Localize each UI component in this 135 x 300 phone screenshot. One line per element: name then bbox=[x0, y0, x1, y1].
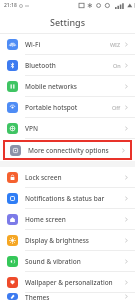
button[interactable]: Themes bbox=[0, 293, 135, 300]
button[interactable]: Sound & vibration bbox=[0, 251, 135, 271]
staticText: Home screen bbox=[25, 215, 124, 224]
staticText: More connectivity options bbox=[28, 146, 121, 155]
staticText: Themes bbox=[25, 293, 124, 300]
other: Open Notifications & status bar bbox=[124, 196, 129, 201]
button[interactable]: Mobile networks bbox=[0, 76, 135, 96]
other: Open More connectivity options bbox=[121, 148, 126, 153]
other: Open Display & brightness bbox=[124, 238, 129, 243]
other: Open Sound & vibration bbox=[124, 259, 129, 264]
staticText: Settings bbox=[50, 16, 86, 28]
other: Open Wi-Fi bbox=[124, 42, 129, 47]
staticText: Bluetooth bbox=[25, 61, 113, 70]
staticText: Notifications & status bar bbox=[25, 194, 124, 203]
button[interactable]: Bluetooth bbox=[0, 55, 135, 75]
other: Open Wallpaper & personalization bbox=[124, 280, 129, 285]
other: Open VPN bbox=[124, 126, 129, 131]
button[interactable]: Portable hotspot bbox=[0, 97, 135, 117]
other: Open Bluetooth bbox=[124, 63, 129, 68]
staticText: WIZ bbox=[110, 41, 121, 48]
staticText: 21:18 bbox=[4, 2, 17, 9]
staticText: Wi-Fi bbox=[25, 40, 110, 49]
staticText: Wallpaper & personalization bbox=[25, 278, 124, 287]
staticText: On bbox=[113, 62, 121, 69]
staticText: Sound & vibration bbox=[25, 257, 124, 266]
other: Open Mobile networks bbox=[124, 84, 129, 89]
button[interactable]: Wallpaper & personalization bbox=[0, 272, 135, 292]
staticText: Lock screen bbox=[25, 173, 124, 182]
other: Open Home screen bbox=[124, 217, 129, 222]
staticText: VPN bbox=[25, 124, 124, 133]
staticText: Mobile networks bbox=[25, 82, 124, 91]
button[interactable]: Notifications & status bar bbox=[0, 188, 135, 208]
button[interactable]: More connectivity options bbox=[3, 140, 132, 160]
other: Open Lock screen bbox=[124, 175, 129, 180]
button[interactable]: Lock screen bbox=[0, 167, 135, 187]
other: Open Themes bbox=[124, 294, 129, 299]
other: Open Portable hotspot bbox=[124, 105, 129, 110]
button[interactable]: Wi-Fi bbox=[0, 34, 135, 54]
staticText: Display & brightness bbox=[25, 236, 124, 245]
button[interactable]: Home screen bbox=[0, 209, 135, 229]
button[interactable]: VPN bbox=[0, 118, 135, 138]
staticText: Off bbox=[112, 104, 121, 111]
button[interactable]: Display & brightness bbox=[0, 230, 135, 250]
staticText: Portable hotspot bbox=[25, 103, 112, 112]
